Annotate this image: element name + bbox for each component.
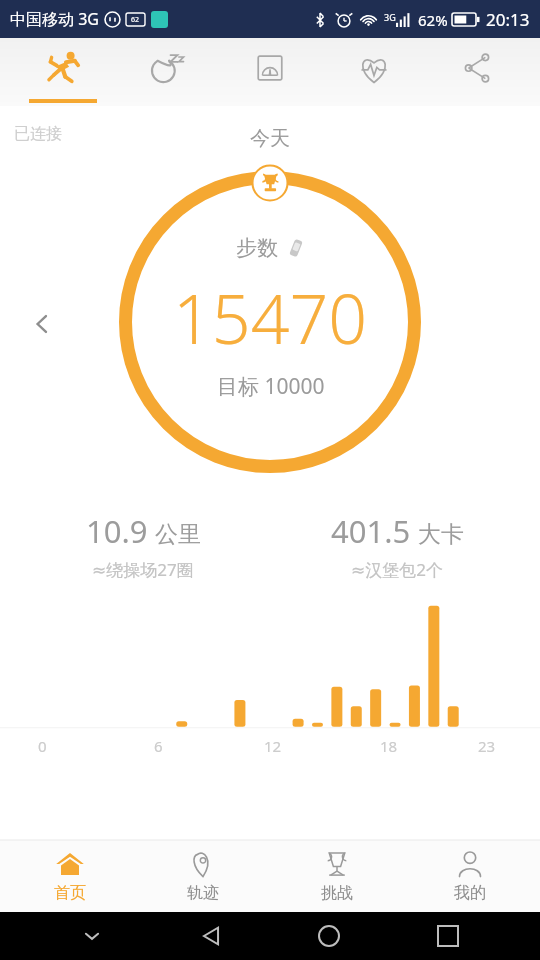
button[interactable]: Hide: [65, 912, 119, 960]
button[interactable]: Steps ring: [110, 162, 430, 482]
staticText: 18: [380, 736, 398, 756]
staticText: 中国移动 3G: [10, 8, 99, 30]
button[interactable]: Home: [302, 912, 356, 960]
staticText: 62: [131, 15, 140, 25]
staticText: 23: [478, 736, 496, 756]
staticText: 62%: [418, 10, 448, 30]
button[interactable]: Achievement: [251, 164, 289, 202]
staticText: 已连接: [14, 124, 62, 144]
staticText: 0: [38, 736, 47, 756]
button[interactable]: Sleep: [125, 38, 207, 106]
staticText: 首页: [54, 883, 86, 903]
staticText: 6: [154, 736, 163, 756]
button[interactable]: Previous day: [20, 302, 64, 346]
staticText: 大卡: [418, 520, 464, 549]
staticText: 目标 10000: [217, 372, 325, 401]
button[interactable]: 挑战: [274, 840, 400, 912]
staticText: 轨迹: [187, 883, 219, 903]
staticText: ≈汉堡包2个: [351, 558, 443, 581]
button[interactable]: Back: [184, 912, 238, 960]
staticText: 20:13: [486, 8, 530, 31]
staticText: ≈绕操场27圈: [92, 558, 194, 581]
button[interactable]: Share: [436, 38, 518, 106]
staticText: 挑战: [321, 883, 353, 903]
button[interactable]: 轨迹: [140, 840, 266, 912]
button[interactable]: 首页: [7, 840, 133, 912]
button[interactable]: 我的: [407, 840, 533, 912]
staticText: 401.5: [331, 510, 411, 552]
button[interactable]: Heart rate: [333, 38, 415, 106]
staticText: 今天: [0, 126, 540, 151]
staticText: 步数: [236, 235, 278, 261]
button[interactable]: 10.9: [33, 510, 253, 581]
staticText: 公里: [155, 520, 201, 549]
button[interactable]: Steps: [22, 38, 104, 106]
staticText: 10.9: [86, 510, 148, 552]
button[interactable]: 401.5: [287, 510, 507, 581]
staticText: 3G: [384, 11, 396, 23]
staticText: 我的: [454, 883, 486, 903]
button[interactable]: Recents: [421, 912, 475, 960]
staticText: 15470: [173, 271, 368, 364]
button[interactable]: Weight: [229, 38, 311, 106]
staticText: 12: [264, 736, 282, 756]
